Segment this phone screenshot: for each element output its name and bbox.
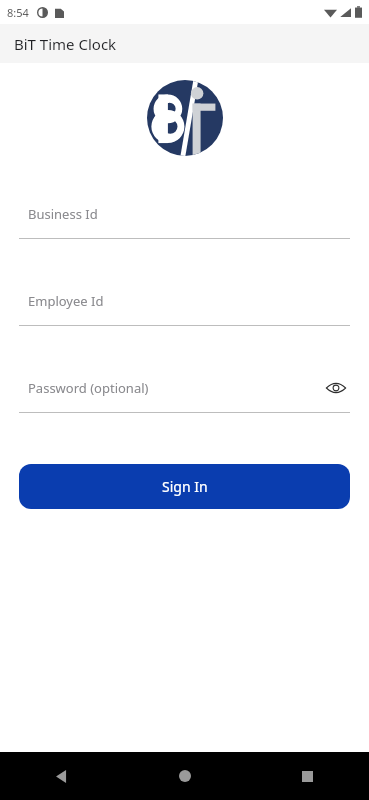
button[interactable]: Sign In — [19, 464, 350, 509]
staticText: Business Id — [28, 205, 98, 223]
button[interactable]: Business Id — [19, 202, 350, 239]
button[interactable]: Home — [123, 752, 246, 800]
button[interactable]: Recent apps — [246, 752, 369, 800]
button[interactable]: Employee Id — [19, 289, 350, 326]
button[interactable]: Show password — [322, 376, 350, 400]
staticText: Password (optional) — [28, 379, 149, 397]
staticText: Employee Id — [28, 292, 104, 310]
button[interactable]: Back — [0, 752, 123, 800]
staticText: 8:54 — [7, 5, 29, 20]
staticText: BiT Time Clock — [14, 34, 117, 54]
staticText: Sign In — [162, 477, 208, 496]
button[interactable]: Password (optional) — [19, 376, 350, 413]
